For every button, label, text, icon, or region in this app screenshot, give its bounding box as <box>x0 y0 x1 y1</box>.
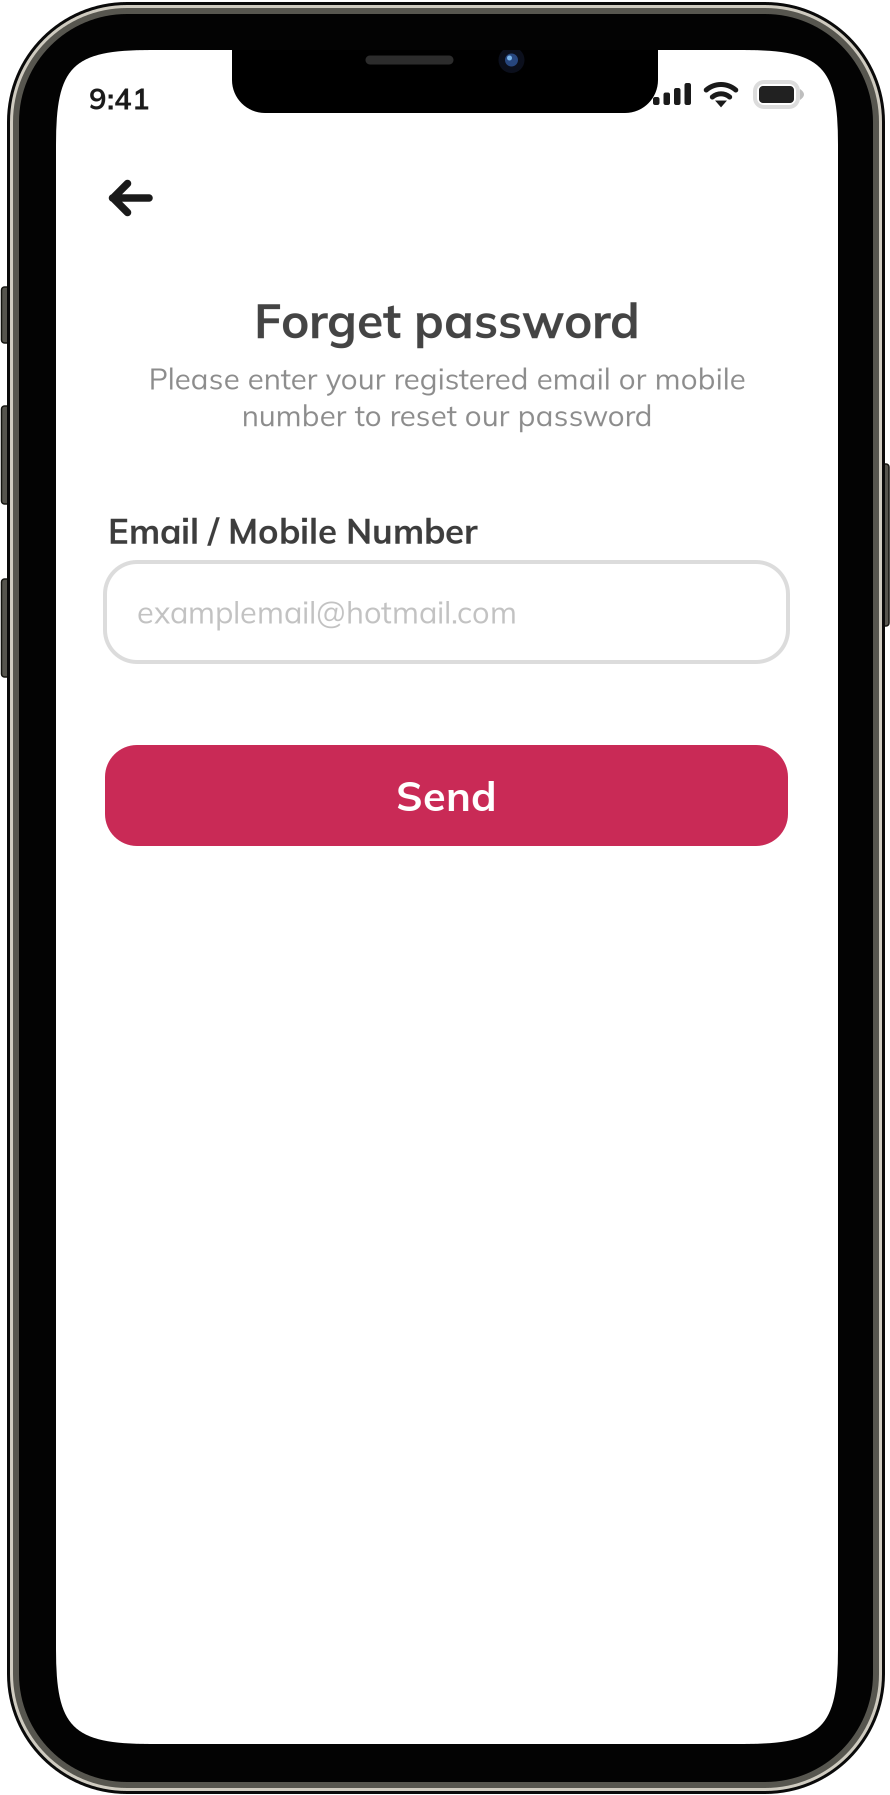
staticText: Forget password <box>254 290 640 350</box>
staticText: Email / Mobile Number <box>108 509 478 552</box>
staticText: 9:41 <box>89 80 150 117</box>
staticText: examplemail@hotmail.com <box>137 593 517 631</box>
button[interactable]: Back <box>92 164 169 232</box>
staticText: Send <box>396 770 497 821</box>
button[interactable]: Send <box>105 745 788 846</box>
staticText: Please enter your registered email or mo… <box>148 360 745 434</box>
